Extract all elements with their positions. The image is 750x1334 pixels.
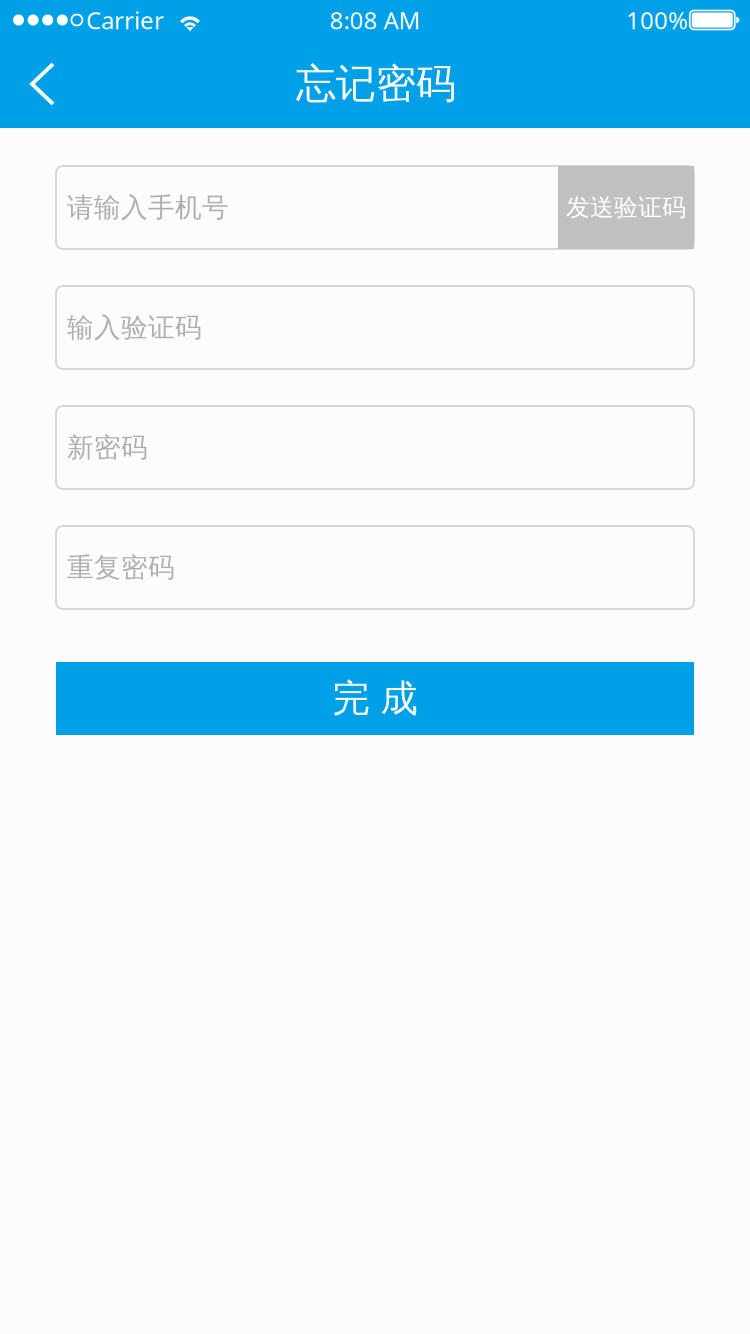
staticText: 发送验证码: [566, 193, 686, 222]
staticText: 8:08 AM: [329, 4, 420, 36]
button[interactable]: Back: [0, 40, 85, 128]
button[interactable]: 新密码: [56, 406, 694, 489]
button[interactable]: 重复密码: [56, 526, 694, 609]
staticText: 忘记密码: [296, 59, 456, 108]
button[interactable]: 输入验证码: [56, 286, 694, 369]
staticText: 100%: [626, 4, 688, 36]
staticText: 重复密码: [67, 551, 175, 584]
staticText: Carrier: [86, 4, 164, 36]
button[interactable]: 完 成: [56, 662, 694, 735]
staticText: 输入验证码: [67, 311, 202, 344]
staticText: 完 成: [332, 676, 417, 721]
staticText: 新密码: [67, 431, 148, 464]
button[interactable]: 请输入手机号: [56, 166, 694, 249]
staticText: 请输入手机号: [67, 191, 229, 224]
button[interactable]: 发送验证码: [558, 166, 694, 249]
